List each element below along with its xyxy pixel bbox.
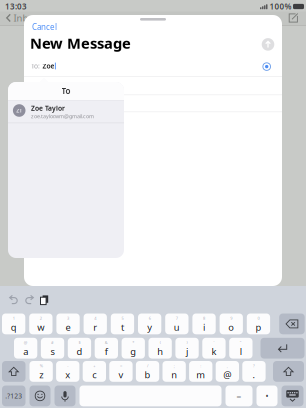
staticText: 7 <box>176 315 178 321</box>
staticText: f <box>105 345 108 358</box>
button[interactable]: Redo <box>24 295 35 306</box>
staticText: l <box>240 345 242 358</box>
staticText: w <box>37 321 44 333</box>
staticText: $ <box>78 340 80 345</box>
button[interactable]: , <box>216 361 239 382</box>
button[interactable]: + <box>83 361 106 382</box>
button[interactable]: # <box>41 338 64 359</box>
staticText: ( <box>160 340 161 345</box>
button[interactable]: 6 <box>138 313 161 334</box>
staticText: o <box>228 321 234 333</box>
button[interactable]: Delete <box>279 313 305 334</box>
staticText: u <box>174 321 180 333</box>
button[interactable]: ; <box>162 361 186 382</box>
staticText: k <box>211 345 216 358</box>
button[interactable]: 0 <box>247 313 270 334</box>
button[interactable]: ( <box>148 338 172 359</box>
staticText: To <box>61 86 70 96</box>
button[interactable]: * <box>122 338 145 359</box>
button[interactable]: 3 <box>56 313 80 334</box>
staticText: 4 <box>94 315 96 321</box>
button[interactable]: 5 <box>111 313 134 334</box>
staticText: z <box>39 368 43 381</box>
staticText: b <box>145 368 151 381</box>
button[interactable]: $ <box>68 338 91 359</box>
staticText: % <box>40 363 43 368</box>
staticText: e <box>65 321 70 333</box>
button[interactable]: 1 <box>2 313 25 334</box>
button[interactable]: Dictate <box>54 385 75 406</box>
button[interactable]: 4 <box>84 313 107 334</box>
staticText: .?123 <box>5 391 22 400</box>
button[interactable]: ZT <box>8 101 124 123</box>
button[interactable]: • <box>256 385 277 406</box>
staticText: m <box>196 368 205 381</box>
button[interactable]: Shift <box>273 361 304 382</box>
button[interactable]: 8 <box>192 313 216 334</box>
staticText: 1 <box>13 315 15 321</box>
staticText: & <box>105 340 108 345</box>
button[interactable]: Numbers <box>2 385 25 406</box>
button[interactable]: Undo <box>8 295 19 306</box>
staticText: ? <box>253 363 255 368</box>
staticText: - <box>67 363 68 368</box>
staticText: p <box>255 321 261 333</box>
button[interactable]: / <box>136 361 159 382</box>
staticText: 3 <box>67 315 69 321</box>
staticText: * <box>132 340 134 345</box>
staticText: x <box>65 368 70 381</box>
staticText: Cancel <box>32 22 57 32</box>
staticText: 6 <box>149 315 151 321</box>
staticText: ' <box>213 340 214 345</box>
button[interactable]: Emoji <box>29 385 50 406</box>
staticText: New Message <box>30 33 131 53</box>
staticText: , <box>227 363 228 368</box>
staticText: . <box>252 368 255 381</box>
button[interactable]: ' <box>202 338 226 359</box>
button[interactable]: 7 <box>165 313 188 334</box>
button[interactable]: Shift <box>2 361 25 382</box>
staticText: zoe.taylor.wm@gmail.com <box>31 113 94 120</box>
staticText: @ <box>24 340 28 345</box>
button[interactable]: Return <box>260 338 304 359</box>
button[interactable]: % <box>29 361 53 382</box>
button[interactable]: 9 <box>220 313 243 334</box>
button[interactable]: & <box>95 338 118 359</box>
staticText: ZT <box>16 107 22 114</box>
staticText: t <box>121 321 124 333</box>
staticText: c <box>92 368 96 381</box>
staticText: 13:03 <box>5 1 27 12</box>
button[interactable]: " <box>229 338 252 359</box>
staticText: • <box>265 391 268 401</box>
button[interactable]: Paste <box>40 295 51 306</box>
staticText: 5 <box>121 315 123 321</box>
staticText: d <box>76 345 82 358</box>
button[interactable]: Send <box>257 33 279 55</box>
staticText: @ <box>223 368 231 381</box>
button[interactable]: @ <box>14 338 37 359</box>
staticText: j <box>186 345 188 358</box>
staticText: 9 <box>230 315 232 321</box>
button[interactable]: Hide keyboard <box>281 385 303 406</box>
staticText: 100% <box>269 1 291 12</box>
button[interactable]: = <box>109 361 133 382</box>
staticText: + <box>93 363 95 368</box>
staticText: h <box>157 345 163 358</box>
button[interactable]: : <box>189 361 212 382</box>
staticText: v <box>118 368 123 381</box>
button[interactable]: – <box>225 385 252 406</box>
staticText: Zoe <box>42 62 54 70</box>
button[interactable]: 2 <box>29 313 52 334</box>
button[interactable]: ? <box>242 361 266 382</box>
staticText: – <box>236 390 241 402</box>
button[interactable]: Cancel <box>26 20 70 33</box>
staticText: 2 <box>40 315 42 321</box>
button[interactable]: ) <box>175 338 199 359</box>
button[interactable]: - <box>56 361 79 382</box>
staticText: : <box>200 363 201 368</box>
staticText: n <box>171 368 177 381</box>
staticText: a <box>23 345 28 358</box>
button[interactable]: Add contact <box>258 59 276 75</box>
